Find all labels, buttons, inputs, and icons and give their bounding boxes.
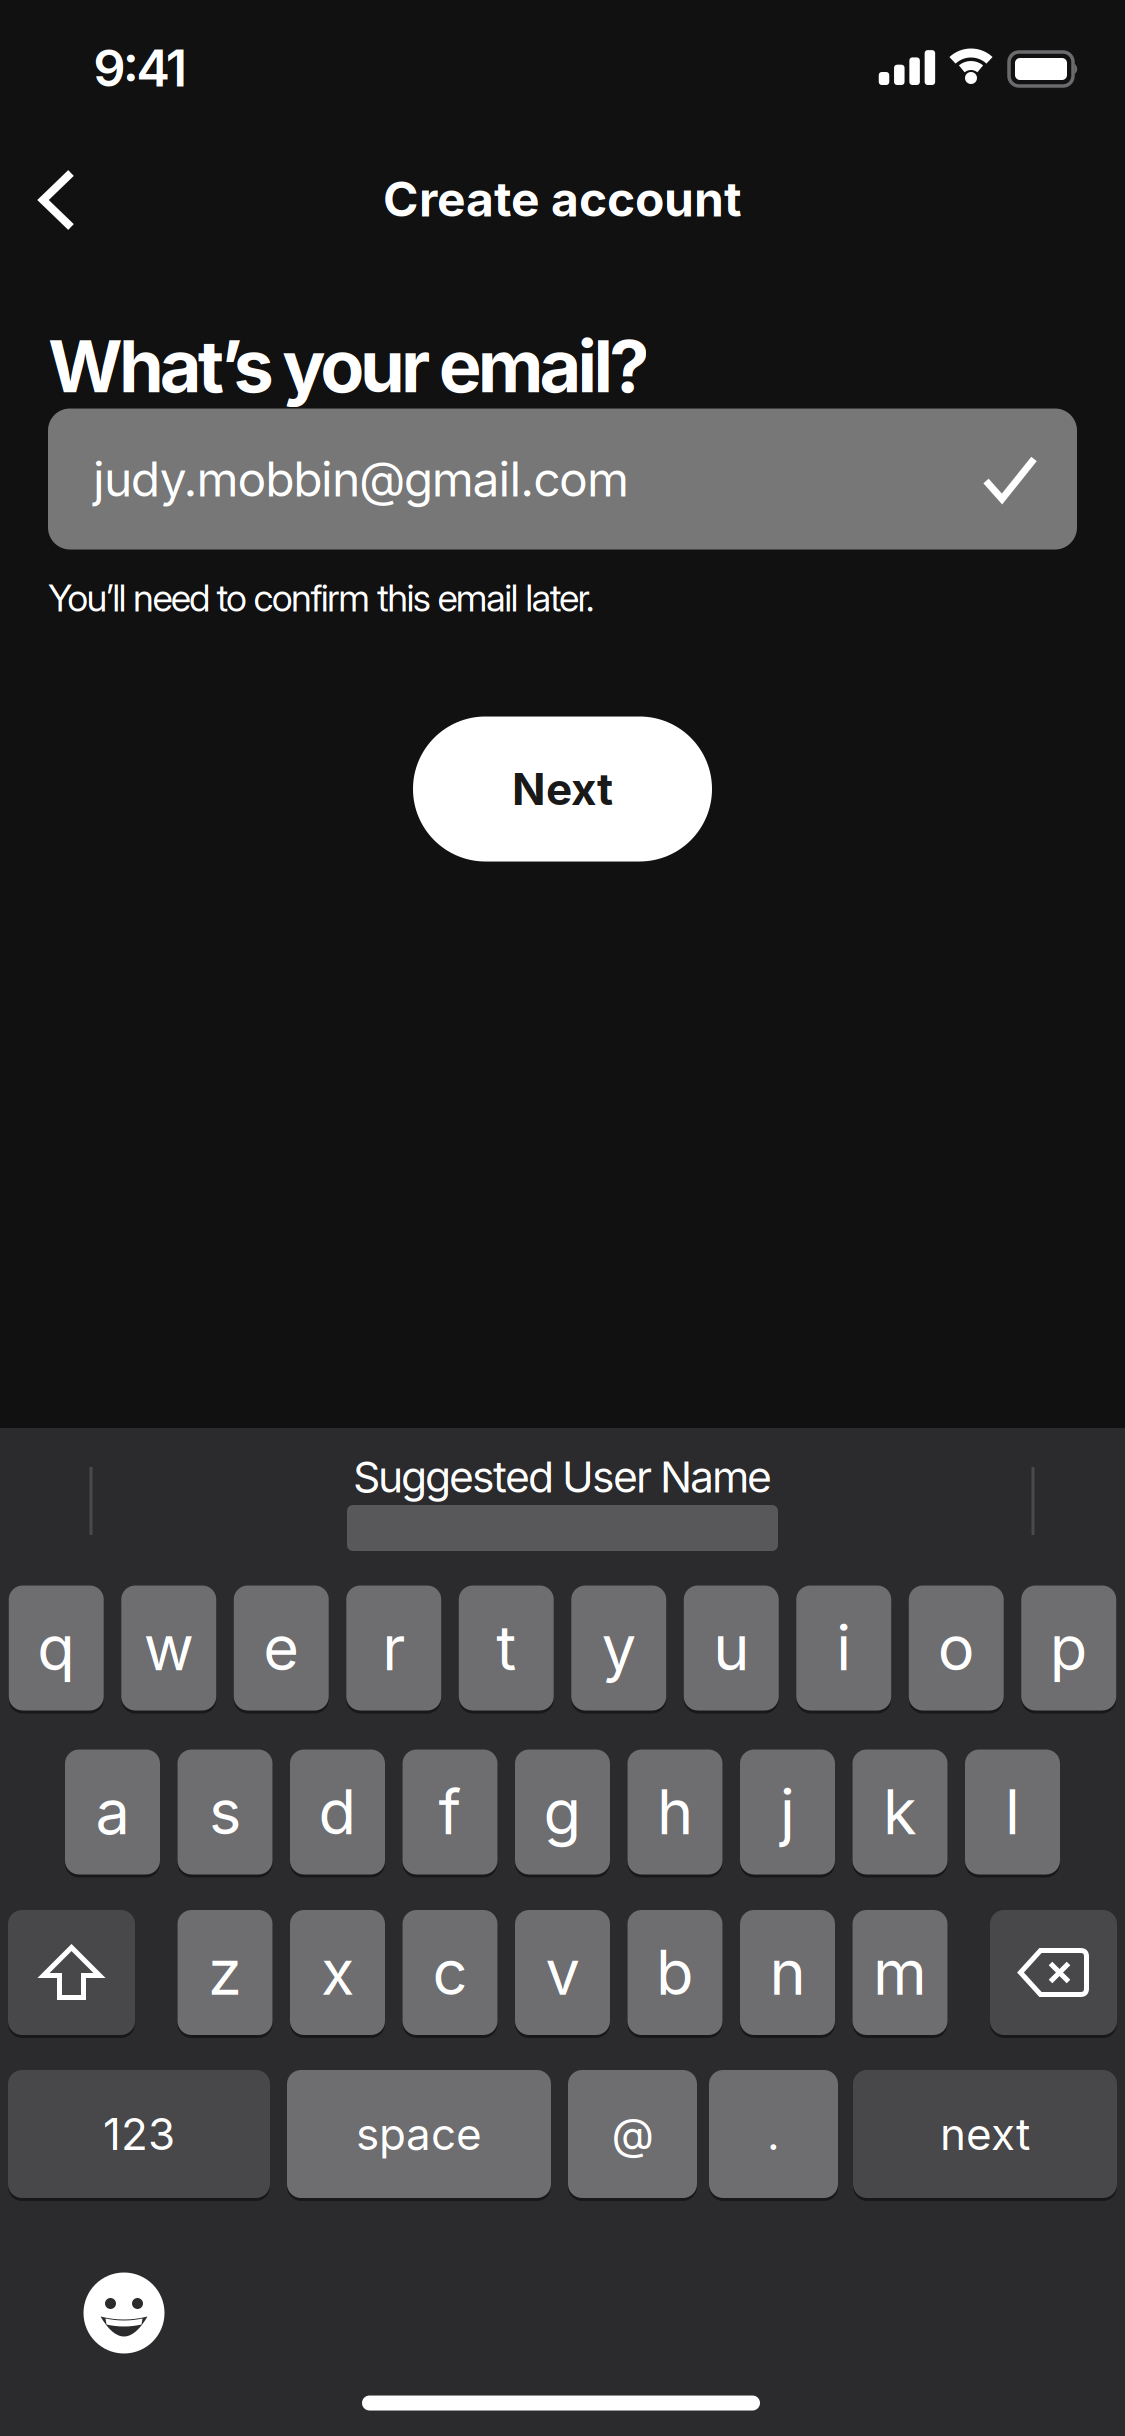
staticText: d — [318, 1776, 356, 1848]
staticText: i — [836, 1612, 851, 1684]
button[interactable]: 123 — [8, 2068, 270, 2199]
button[interactable]: o — [909, 1584, 1004, 1712]
button[interactable]: b — [627, 1908, 722, 2036]
staticText: e — [263, 1612, 299, 1684]
staticText: f — [438, 1776, 461, 1848]
button[interactable]: Shift — [8, 1908, 135, 2036]
staticText: You’ll need to confirm this email later. — [48, 576, 595, 620]
button[interactable]: z — [177, 1908, 272, 2036]
staticText: w — [144, 1612, 194, 1684]
staticText: What’s your email? — [48, 323, 649, 408]
staticText: c — [432, 1936, 467, 2009]
button[interactable]: space — [287, 2068, 551, 2199]
button[interactable]: g — [515, 1748, 610, 1876]
staticText: k — [883, 1776, 917, 1848]
button[interactable]: Emoji — [83, 2272, 164, 2353]
button[interactable]: p — [1021, 1584, 1116, 1712]
staticText: Next — [512, 763, 613, 815]
staticText: g — [543, 1776, 581, 1848]
button[interactable]: t — [459, 1584, 554, 1712]
button[interactable]: s — [177, 1748, 272, 1876]
button[interactable]: . — [709, 2068, 838, 2199]
staticText: y — [602, 1612, 636, 1684]
staticText: r — [382, 1612, 405, 1684]
staticText: h — [657, 1776, 693, 1848]
button[interactable]: e — [234, 1584, 329, 1712]
staticText: 123 — [103, 2108, 175, 2160]
button[interactable]: @ — [568, 2068, 697, 2199]
button[interactable]: j — [740, 1748, 835, 1876]
staticText: 9:41 — [93, 38, 187, 98]
button[interactable]: d — [290, 1748, 385, 1876]
button[interactable]: x — [290, 1908, 385, 2036]
button[interactable]: Email, judy.mobbin@gmail.com — [48, 408, 1077, 549]
staticText: b — [656, 1936, 694, 2009]
button[interactable]: c — [402, 1908, 497, 2036]
staticText: judy.mobbin@gmail.com — [93, 451, 629, 507]
button[interactable]: Delete — [990, 1908, 1117, 2036]
button[interactable]: f — [402, 1748, 497, 1876]
button[interactable]: Back — [23, 155, 93, 245]
staticText: space — [356, 2108, 482, 2160]
staticText: a — [95, 1776, 129, 1848]
button[interactable]: m — [852, 1908, 947, 2036]
staticText: s — [209, 1776, 241, 1848]
staticText: next — [940, 2108, 1030, 2160]
staticText: m — [873, 1936, 927, 2009]
button[interactable]: Next — [413, 716, 712, 861]
button[interactable]: w — [121, 1584, 216, 1712]
staticText: t — [496, 1612, 516, 1684]
staticText: v — [545, 1936, 579, 2009]
staticText: j — [780, 1776, 795, 1848]
button[interactable]: k — [852, 1748, 947, 1876]
staticText: u — [713, 1612, 749, 1684]
staticText: Create account — [383, 171, 742, 227]
button[interactable]: r — [346, 1584, 441, 1712]
button[interactable]: l — [965, 1748, 1060, 1876]
staticText: p — [1050, 1612, 1088, 1684]
button[interactable]: n — [740, 1908, 835, 2036]
button[interactable]: u — [684, 1584, 779, 1712]
staticText: . — [767, 2108, 780, 2160]
button[interactable]: h — [627, 1748, 722, 1876]
button[interactable]: i — [796, 1584, 891, 1712]
staticText: x — [321, 1936, 354, 2009]
button[interactable]: y — [571, 1584, 666, 1712]
staticText: l — [1005, 1776, 1020, 1848]
staticText: o — [938, 1612, 975, 1684]
staticText: z — [208, 1936, 242, 2009]
staticText: q — [37, 1612, 75, 1684]
staticText: @ — [611, 2108, 653, 2160]
button[interactable]: q — [9, 1584, 104, 1712]
staticText: n — [769, 1936, 805, 2009]
staticText: Suggested User Name — [353, 1452, 772, 1502]
button[interactable]: v — [515, 1908, 610, 2036]
button[interactable]: next — [853, 2068, 1117, 2199]
button[interactable]: a — [65, 1748, 160, 1876]
